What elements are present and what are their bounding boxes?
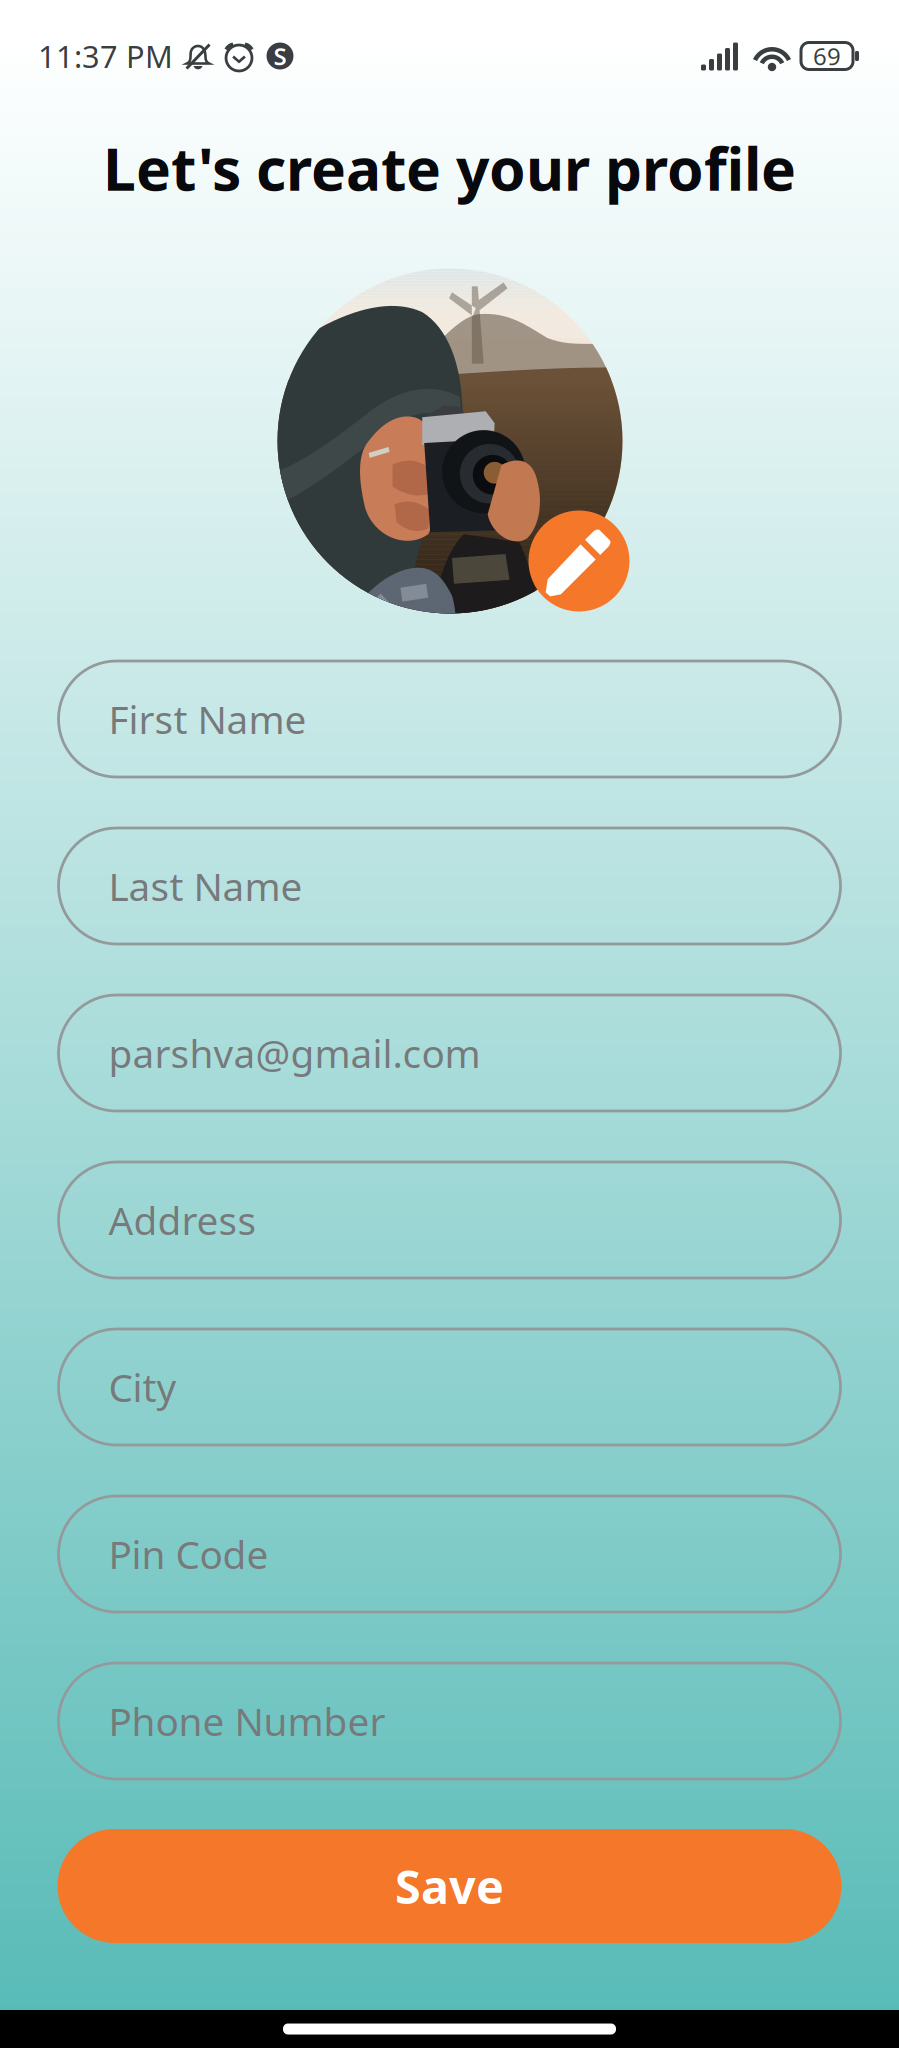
button[interactable]: Address [58, 1162, 840, 1278]
staticText: 11:37 PM [38, 36, 173, 76]
staticText: Address [108, 1194, 256, 1246]
staticText: Let's create your profile [103, 129, 796, 207]
staticText: S [273, 40, 286, 72]
button[interactable]: Save [57, 1829, 841, 1943]
button[interactable]: First Name [58, 661, 840, 777]
staticText: Phone Number [108, 1695, 385, 1747]
staticText: Pin Code [108, 1528, 268, 1580]
button[interactable]: Last Name [58, 828, 840, 944]
button[interactable]: City [58, 1329, 840, 1445]
staticText: City [108, 1361, 176, 1413]
staticText: Save [395, 1855, 504, 1917]
staticText: parshva@gmail.com [108, 1027, 480, 1079]
staticText: Last Name [108, 860, 302, 912]
staticText: First Name [108, 693, 306, 745]
button[interactable]: parshva@gmail.com [58, 995, 840, 1111]
button[interactable]: Phone Number [58, 1663, 840, 1779]
staticText: 69 [813, 40, 841, 72]
button[interactable]: Edit profile photo [528, 510, 629, 611]
button[interactable]: Pin Code [58, 1496, 840, 1612]
